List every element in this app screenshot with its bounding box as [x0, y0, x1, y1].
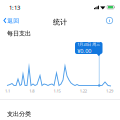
staticText: 每日支出 [7, 29, 31, 37]
staticText: 1-22 [80, 88, 87, 94]
staticText: 返回 [7, 17, 19, 24]
staticText: 支出分类 [7, 110, 31, 118]
staticText: 1-8 [29, 88, 34, 94]
staticText: 1月24日 周三 [77, 41, 100, 47]
staticText: 1:13 [9, 4, 20, 12]
staticText: 1-15 [53, 88, 60, 94]
button[interactable]: 返回 [0, 15, 22, 26]
staticText: 统计 [53, 18, 67, 27]
staticText: 1-29 [106, 88, 113, 94]
staticText: ¥0.00 [77, 47, 91, 55]
button[interactable]: Info [103, 14, 115, 26]
staticText: 1-1 [5, 88, 10, 94]
